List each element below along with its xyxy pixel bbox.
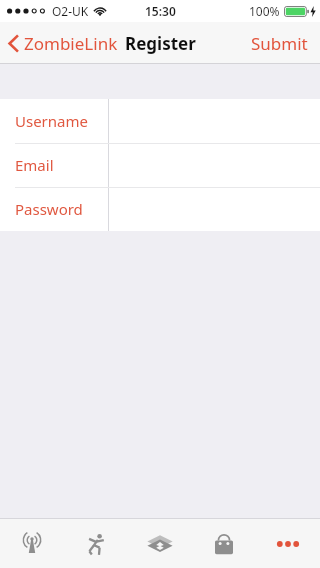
button[interactable]: Password xyxy=(0,187,320,231)
staticText: ZombieLink xyxy=(24,32,118,55)
staticText: Register xyxy=(125,32,196,55)
staticText: Email xyxy=(15,155,54,175)
button[interactable]: ZombieLink xyxy=(0,22,126,64)
button[interactable]: Activity xyxy=(64,519,128,568)
button[interactable]: Layers xyxy=(128,519,192,568)
staticText: 100% xyxy=(249,3,280,19)
button[interactable]: More xyxy=(256,519,320,568)
staticText: Submit xyxy=(251,32,308,55)
button[interactable]: Broadcast xyxy=(0,519,64,568)
button[interactable]: Email xyxy=(0,143,320,187)
staticText: O2-UK xyxy=(52,3,89,19)
staticText: Username xyxy=(15,111,88,131)
button[interactable]: Shop xyxy=(192,519,256,568)
button[interactable]: Submit xyxy=(239,22,320,64)
staticText: 15:30 xyxy=(145,3,176,19)
button[interactable]: Username xyxy=(0,99,320,143)
staticText: Password xyxy=(15,199,83,219)
